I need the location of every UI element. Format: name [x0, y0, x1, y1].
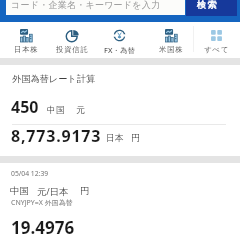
button[interactable]: 米国株 — [148, 22, 194, 56]
staticText: 中国 — [10, 185, 29, 197]
staticText: 05/04 12:39 — [11, 169, 49, 178]
staticText: 米国株 — [159, 45, 184, 54]
button[interactable]: 検索 — [186, 0, 237, 16]
button[interactable]: 投資信託 — [49, 22, 95, 56]
staticText: 中国 — [47, 105, 65, 116]
staticText: 投資信託 — [56, 45, 89, 54]
staticText: FX・為替 — [104, 45, 135, 55]
staticText: 19.4976 — [11, 216, 75, 239]
staticText: CNYJPY=X 外国為替 — [11, 198, 73, 208]
staticText: すべて — [204, 45, 229, 54]
staticText: 元 — [76, 105, 85, 116]
button[interactable]: FX・為替 — [96, 22, 142, 56]
staticText: 元/日本 — [37, 185, 69, 198]
staticText: 検索 — [197, 0, 218, 10]
staticText: 450 — [11, 96, 39, 118]
staticText: 日本 — [106, 133, 124, 144]
button[interactable]: すべて — [193, 22, 239, 56]
button[interactable]: コード・企業名・キーワードを入力 — [6, 0, 185, 15]
staticText: コード・企業名・キーワードを入力 — [11, 0, 161, 10]
staticText: 円 — [131, 133, 140, 144]
staticText: 8,773.9173 — [11, 125, 102, 147]
button[interactable]: 日本株 — [3, 22, 49, 56]
staticText: 円 — [80, 185, 90, 197]
staticText: 日本株 — [14, 45, 39, 54]
staticText: 外国為替レート計算 — [12, 73, 96, 85]
